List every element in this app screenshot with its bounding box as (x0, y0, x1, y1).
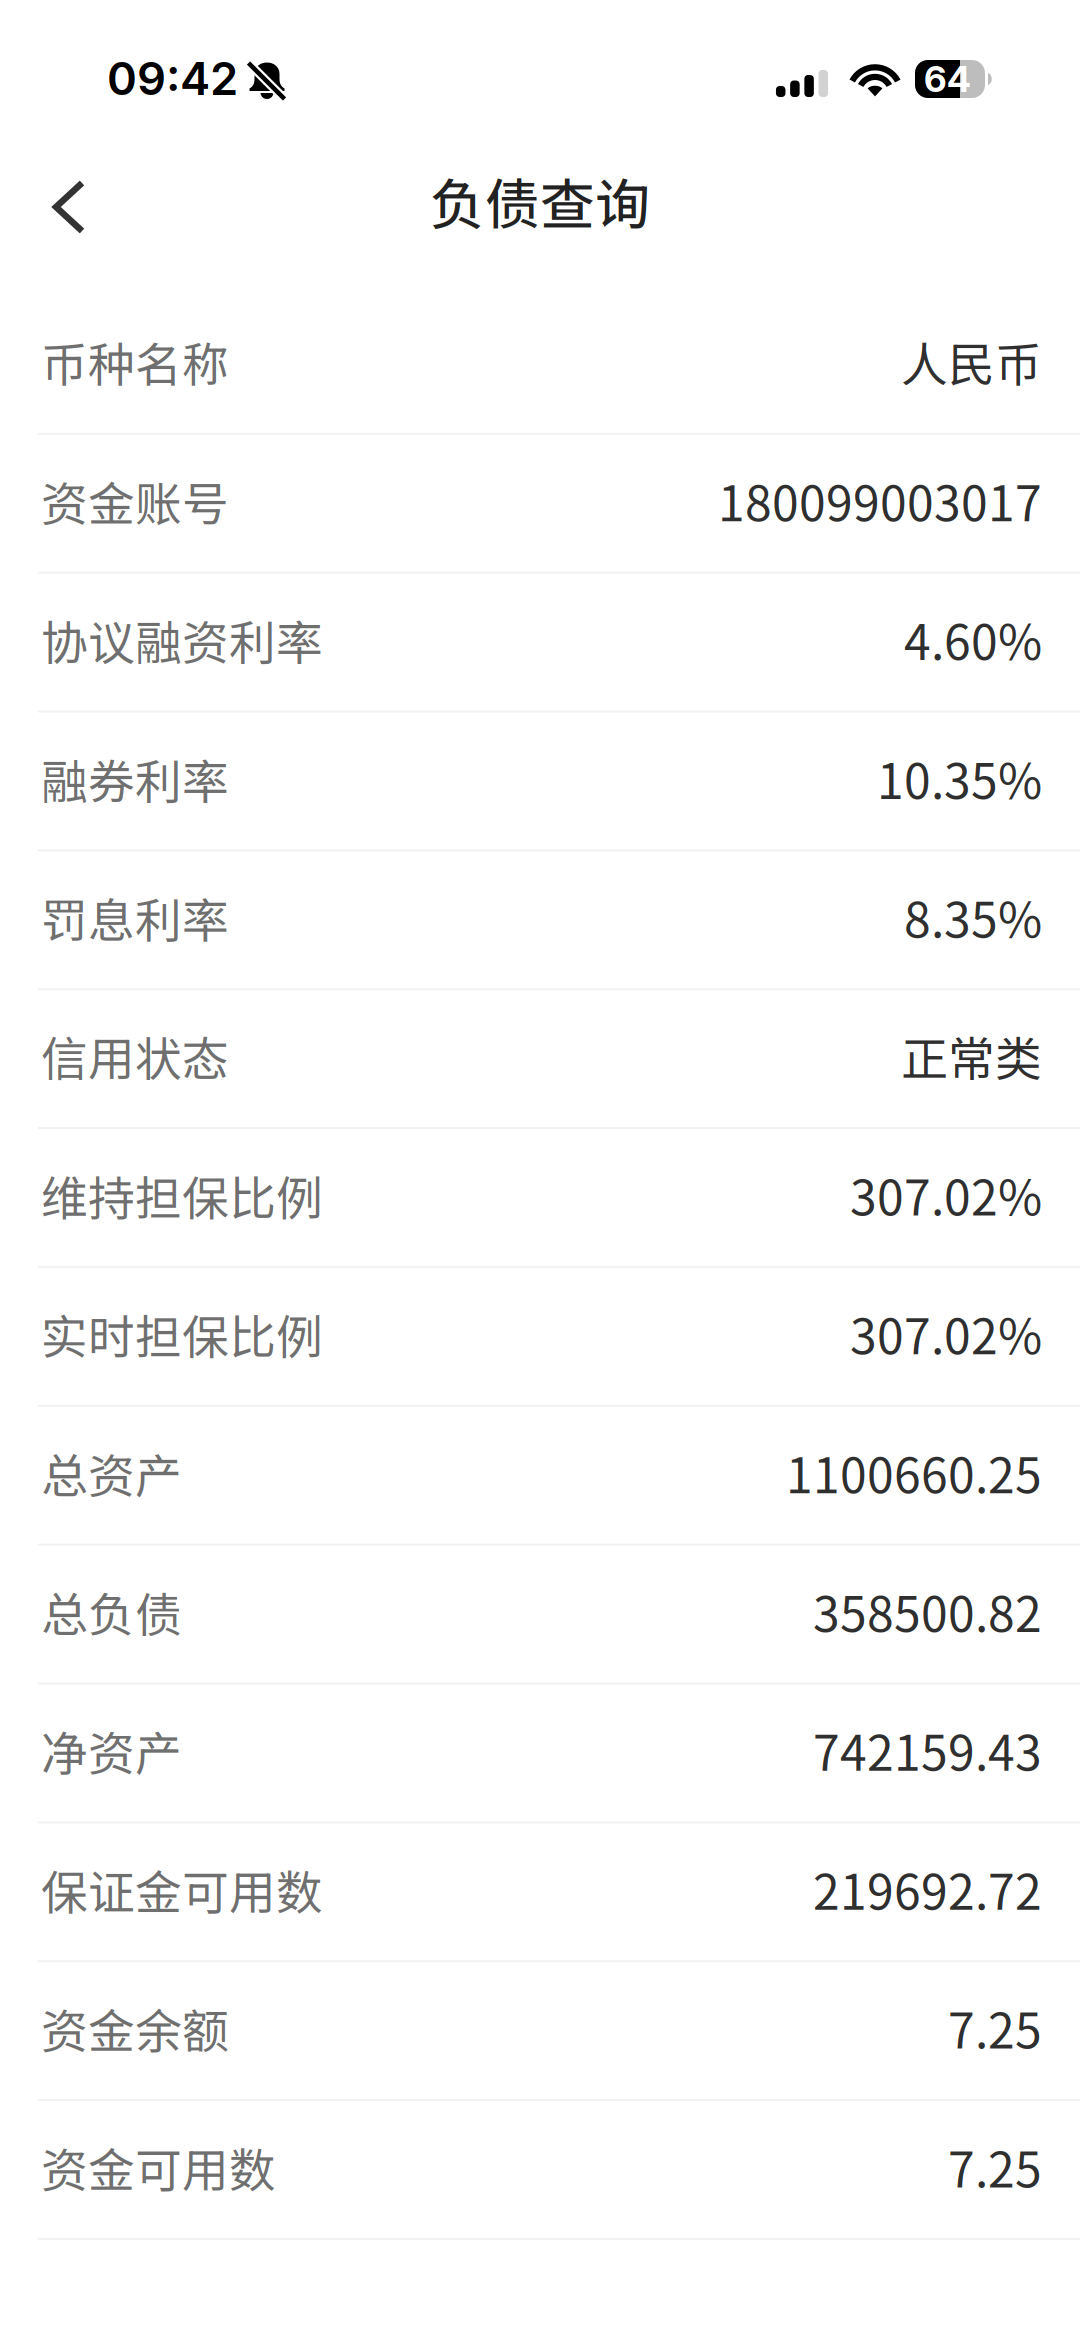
button[interactable]: 资金账号 (0, 435, 1080, 574)
staticText: 219692.72 (813, 1854, 1042, 1923)
button[interactable]: 资金可用数 (0, 2101, 1080, 2240)
staticText: 净资产 (41, 1717, 182, 1784)
staticText: 正常类 (901, 1022, 1042, 1089)
staticText: 1100660.25 (786, 1437, 1042, 1507)
staticText: 总资产 (41, 1439, 182, 1507)
button[interactable]: 净资产 (0, 1684, 1080, 1823)
staticText: 4.60% (904, 604, 1042, 674)
staticText: 协议融资利率 (41, 606, 323, 673)
staticText: 资金账号 (41, 467, 229, 535)
staticText: 负债查询 (430, 161, 650, 240)
staticText: 180099003017 (718, 465, 1042, 535)
staticText: 融券利率 (41, 745, 229, 812)
button[interactable]: 协议融资利率 (0, 574, 1080, 712)
button[interactable]: 维持担保比例 (0, 1129, 1080, 1268)
staticText: 09:42 (107, 51, 238, 106)
staticText: 10.35% (877, 743, 1042, 813)
staticText: 307.02% (850, 1160, 1042, 1229)
button[interactable]: 实时担保比例 (0, 1268, 1080, 1407)
button[interactable]: 融券利率 (0, 713, 1080, 851)
staticText: 罚息利率 (41, 884, 229, 951)
staticText: 64 (924, 57, 971, 101)
staticText: 358500.82 (813, 1576, 1042, 1646)
staticText: 币种名称 (41, 328, 229, 395)
button[interactable]: 资金余额 (0, 1962, 1080, 2101)
staticText: 742159.43 (813, 1715, 1042, 1785)
staticText: 7.25 (948, 1993, 1042, 2062)
staticText: 总负债 (41, 1578, 182, 1645)
staticText: 维持担保比例 (41, 1161, 323, 1229)
staticText: 8.35% (904, 882, 1042, 952)
button[interactable]: 总资产 (0, 1407, 1080, 1546)
staticText: 实时担保比例 (41, 1300, 323, 1368)
button[interactable]: 总负债 (0, 1546, 1080, 1684)
button[interactable]: Back (23, 153, 119, 261)
button[interactable]: 币种名称 (0, 296, 1080, 435)
staticText: 307.02% (850, 1299, 1042, 1368)
button[interactable]: 信用状态 (0, 990, 1080, 1129)
staticText: 7.25 (948, 2132, 1042, 2201)
staticText: 资金可用数 (41, 2133, 276, 2201)
staticText: 资金余额 (41, 1994, 229, 2062)
button[interactable]: 罚息利率 (0, 851, 1080, 990)
staticText: 信用状态 (41, 1022, 229, 1089)
staticText: 人民币 (901, 328, 1042, 395)
staticText: 保证金可用数 (41, 1856, 323, 1923)
button[interactable]: 保证金可用数 (0, 1823, 1080, 1962)
